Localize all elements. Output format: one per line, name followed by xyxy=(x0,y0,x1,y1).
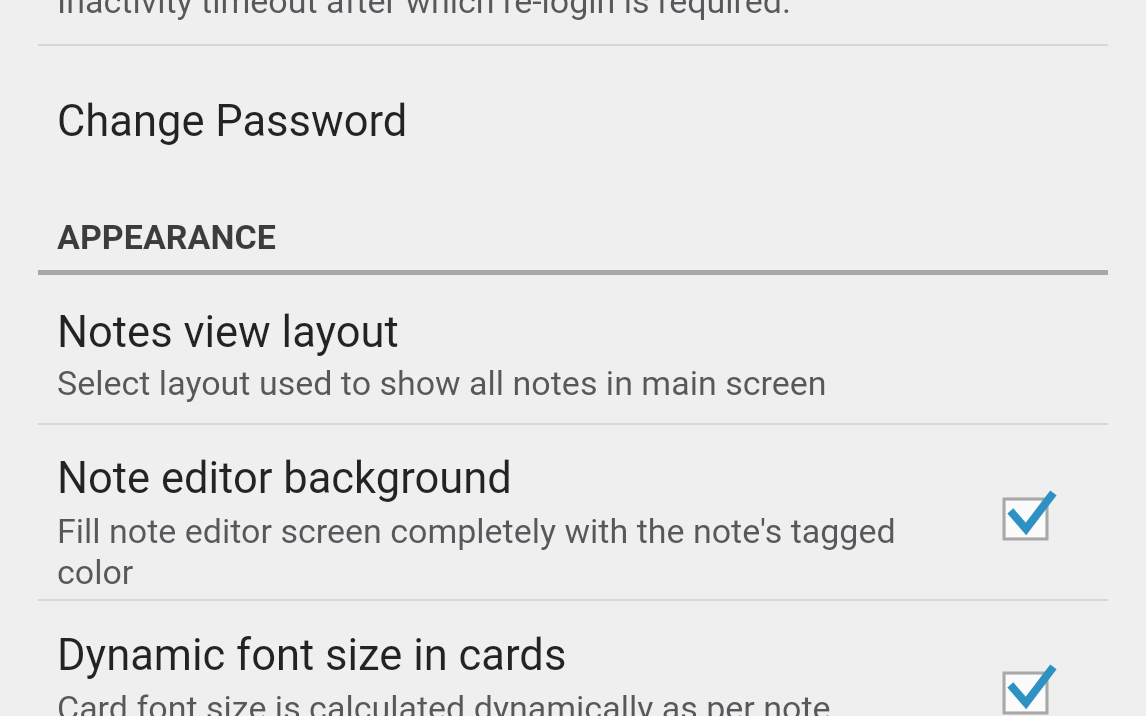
staticText: Fill note editor screen completely with … xyxy=(57,511,896,551)
button[interactable]: Inactivity timeout after which re-login … xyxy=(0,0,1146,44)
staticText: Change Password xyxy=(57,96,408,147)
staticText: Inactivity timeout after which re-login … xyxy=(57,0,791,21)
staticText: Note editor background xyxy=(57,453,512,504)
button[interactable]: Note editor background xyxy=(0,425,1146,599)
staticText: Dynamic font size in cards xyxy=(57,630,567,681)
button[interactable]: Dynamic font size in cards xyxy=(0,601,1146,716)
staticText: color xyxy=(57,552,134,592)
button[interactable]: Change Password xyxy=(0,46,1146,200)
button[interactable]: Notes view layout xyxy=(0,275,1146,423)
staticText: Select layout used to show all notes in … xyxy=(57,363,827,403)
staticText: Card font size is calculated dynamically… xyxy=(57,688,831,716)
staticText: Notes view layout xyxy=(57,307,399,358)
staticText: APPEARANCE xyxy=(57,217,276,257)
